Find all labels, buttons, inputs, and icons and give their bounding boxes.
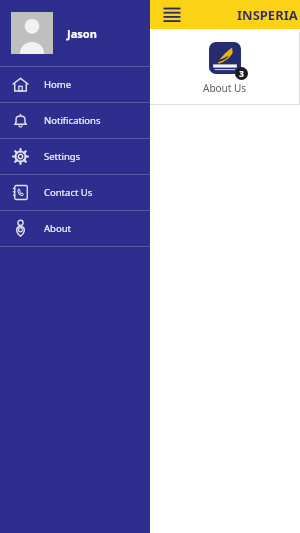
staticText: About Us xyxy=(203,81,247,95)
staticText: Settings xyxy=(44,150,81,163)
button[interactable]: Notifications xyxy=(0,103,150,138)
button[interactable]: Settings xyxy=(0,139,150,174)
button[interactable]: 3 xyxy=(150,32,300,105)
staticText: 3 xyxy=(239,68,244,79)
staticText: Jason xyxy=(67,26,97,41)
button[interactable]: Jason xyxy=(0,0,150,66)
button[interactable]: Open navigation menu xyxy=(159,2,185,28)
staticText: Home xyxy=(44,78,72,91)
button[interactable]: Contact Us xyxy=(0,175,150,210)
staticText: About xyxy=(44,222,71,235)
staticText: INSPERIA xyxy=(237,6,298,24)
staticText: Notifications xyxy=(44,114,101,127)
button[interactable]: Home xyxy=(0,67,150,102)
button[interactable]: About xyxy=(0,211,150,246)
staticText: Contact Us xyxy=(44,186,93,199)
